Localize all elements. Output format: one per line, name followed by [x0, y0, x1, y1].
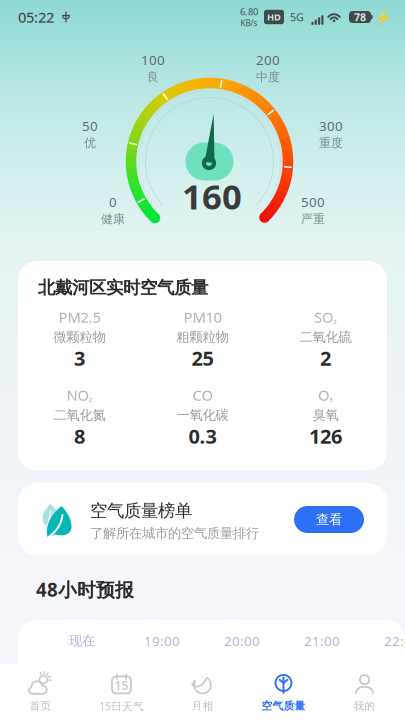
staticText: 健康	[101, 212, 125, 226]
staticText: 首页	[29, 699, 51, 712]
staticText: 3	[74, 345, 85, 371]
staticText: 20:00	[224, 632, 260, 650]
staticText: 查看	[316, 511, 342, 528]
staticText: 北戴河区实时空气质量	[38, 277, 208, 298]
staticText: ⚡	[375, 9, 392, 25]
staticText: ₂	[333, 312, 337, 326]
staticText: PM2.5	[58, 307, 100, 327]
staticText: 200	[256, 51, 280, 69]
staticText: 优	[84, 136, 96, 150]
staticText: 月相	[191, 699, 213, 712]
staticText: 8	[74, 423, 85, 449]
staticText: 现在	[69, 633, 95, 649]
staticText: 一氧化碳	[176, 407, 228, 423]
staticText: PM10	[183, 307, 221, 327]
button[interactable]: 首页	[0, 664, 81, 720]
staticText: O	[318, 385, 329, 405]
staticText: 二氧化氮	[53, 407, 105, 423]
staticText: 重度	[319, 136, 343, 150]
staticText: HD	[267, 11, 281, 23]
staticText: 严重	[301, 212, 325, 226]
staticText: 2	[320, 345, 331, 371]
staticText: 21:00	[304, 632, 340, 650]
staticText: 6.80	[240, 5, 258, 18]
staticText: 良	[147, 70, 159, 84]
staticText: 空气质量	[261, 699, 305, 712]
staticText: 19:00	[144, 632, 180, 650]
staticText: 05:22	[18, 7, 54, 27]
staticText: 微颗粒物	[53, 329, 105, 345]
staticText: 粗颗粒物	[176, 329, 228, 345]
staticText: ₂	[88, 390, 92, 404]
staticText: 78	[354, 10, 366, 24]
staticText: 22:00	[384, 632, 405, 650]
staticText: 0.3	[188, 423, 216, 449]
staticText: 300	[319, 117, 343, 135]
staticText: 0	[109, 193, 117, 211]
staticText: ₃	[329, 390, 333, 404]
staticText: 25	[191, 345, 213, 371]
button[interactable]: 我的	[324, 664, 405, 720]
staticText: NO	[66, 385, 88, 405]
staticText: 中度	[256, 70, 280, 84]
staticText: 48小时预报	[36, 577, 134, 602]
button[interactable]: 月相	[162, 664, 243, 720]
staticText: 15	[114, 677, 128, 693]
staticText: 臭氧	[312, 407, 338, 423]
staticText: CO	[192, 385, 212, 405]
staticText: 二氧化硫	[299, 329, 351, 345]
staticText: 500	[301, 193, 325, 211]
button[interactable]: 空气质量榜单	[18, 483, 387, 555]
staticText: 我的	[353, 699, 375, 712]
button[interactable]: 空气质量	[243, 664, 324, 720]
staticText: 160	[182, 173, 242, 219]
staticText: 15日天气	[99, 699, 144, 713]
staticText: 100	[141, 51, 165, 69]
staticText: 126	[309, 423, 342, 449]
staticText: SO	[314, 307, 333, 327]
staticText: 5G	[290, 10, 304, 24]
staticText: 50	[82, 117, 98, 135]
staticText: KB/s	[240, 18, 257, 28]
staticText: 空气质量榜单	[90, 500, 192, 521]
staticText: 了解所在城市的空气质量排行	[90, 525, 259, 541]
button[interactable]: 15	[81, 664, 162, 720]
